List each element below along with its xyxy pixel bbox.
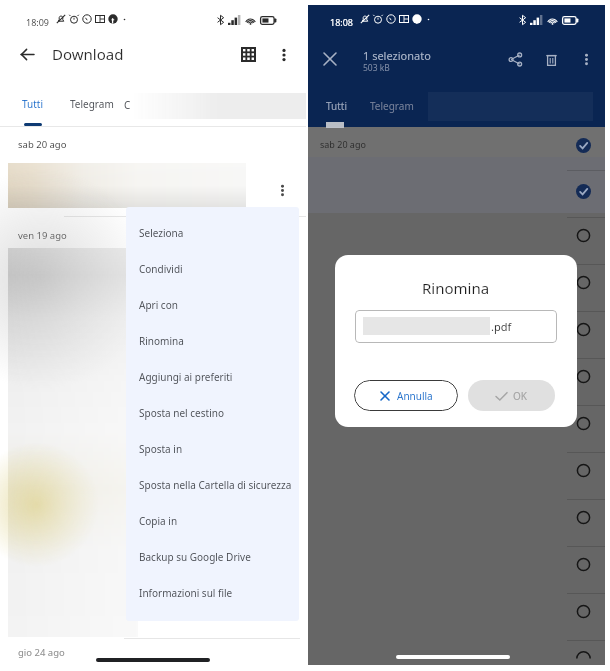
button[interactable]: More options	[271, 42, 296, 67]
button[interactable]: File options	[273, 181, 291, 199]
button[interactable]: Close selection	[317, 46, 343, 72]
button[interactable]: Sposta nella Cartella di sicurezza	[126, 467, 299, 503]
button[interactable]: More options	[573, 46, 599, 72]
button[interactable]: Backup su Google Drive	[126, 539, 299, 575]
staticText: C	[124, 98, 131, 112]
button[interactable]: Grid view	[236, 42, 261, 67]
staticText: Download	[52, 44, 124, 64]
button[interactable]: Telegram	[366, 95, 418, 117]
button[interactable]: Selected	[575, 183, 592, 200]
staticText: sab 20 ago	[18, 138, 67, 151]
button[interactable]	[8, 248, 138, 637]
staticText: Annulla	[397, 389, 433, 403]
button[interactable]: Select item	[576, 510, 591, 525]
button[interactable]: Share	[502, 46, 528, 72]
button[interactable]: Select item	[576, 463, 591, 478]
button[interactable]: Delete	[538, 46, 564, 72]
staticText: Aggiungi ai preferiti	[139, 370, 233, 384]
staticText: ven 19 ago	[18, 229, 67, 242]
button[interactable]: Tutti	[12, 92, 54, 116]
staticText: Tutti	[326, 99, 348, 113]
staticText: Copia in	[139, 514, 178, 528]
button[interactable]: Select item	[576, 604, 591, 619]
button[interactable]	[8, 163, 246, 208]
button[interactable]: Telegram	[66, 92, 118, 116]
button[interactable]: Seleziona	[126, 215, 299, 251]
button[interactable]: Rinomina	[126, 323, 299, 359]
button[interactable]: Sposta in	[126, 431, 299, 467]
staticText: Seleziona	[139, 226, 184, 240]
button[interactable]: OK	[468, 380, 555, 411]
staticText: 503 kB	[363, 62, 390, 74]
button[interactable]: Sposta nel cestino	[126, 395, 299, 431]
button[interactable]: Select item	[576, 416, 591, 431]
staticText: Rinomina	[139, 334, 184, 348]
button[interactable]: Aggiungi ai preferiti	[126, 359, 299, 395]
button[interactable]: Back	[14, 41, 40, 67]
staticText: sab 20 ago	[320, 138, 366, 150]
staticText: Tutti	[22, 97, 44, 111]
staticText: Informazioni sul file	[139, 586, 233, 600]
button[interactable]: Select item	[576, 228, 591, 243]
button[interactable]: Selected	[575, 137, 592, 154]
button[interactable]: Select item	[576, 275, 591, 290]
staticText: 18:09	[26, 16, 50, 28]
staticText: Sposta nella Cartella di sicurezza	[139, 478, 292, 492]
staticText: 18:08	[330, 16, 354, 28]
button[interactable]: Informazioni sul file	[126, 575, 299, 611]
staticText: Telegram	[70, 97, 114, 111]
staticText: Sposta nel cestino	[139, 406, 224, 420]
button[interactable]: Select item	[576, 369, 591, 384]
button[interactable]: Tutti	[316, 95, 358, 117]
button[interactable]: Condividi	[126, 251, 299, 287]
button[interactable]: Select item	[576, 557, 591, 572]
staticText: gio 24 ago	[18, 646, 65, 659]
staticText: Telegram	[370, 99, 414, 113]
staticText: Apri con	[139, 298, 178, 312]
button[interactable]: Annulla	[354, 380, 458, 411]
button[interactable]: .pdf	[355, 310, 557, 343]
button[interactable]: Copia in	[126, 503, 299, 539]
staticText: .pdf	[491, 319, 512, 334]
staticText: 1 selezionato	[363, 48, 431, 63]
button[interactable]: Apri con	[126, 287, 299, 323]
staticText: Condividi	[139, 262, 183, 276]
staticText: Sposta in	[139, 442, 183, 456]
staticText: Rinomina	[422, 278, 490, 298]
staticText: Backup su Google Drive	[139, 550, 251, 564]
button[interactable]: Select item	[576, 322, 591, 337]
staticText: OK	[513, 389, 527, 403]
